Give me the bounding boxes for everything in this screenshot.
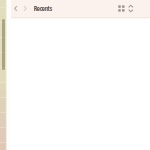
- staticText: Recents: [34, 5, 52, 12]
- button[interactable]: View options: [116, 1, 127, 16]
- button[interactable]: Forward: [20, 1, 30, 15]
- button[interactable]: Sort: [127, 1, 135, 16]
- button[interactable]: Back: [11, 1, 20, 15]
